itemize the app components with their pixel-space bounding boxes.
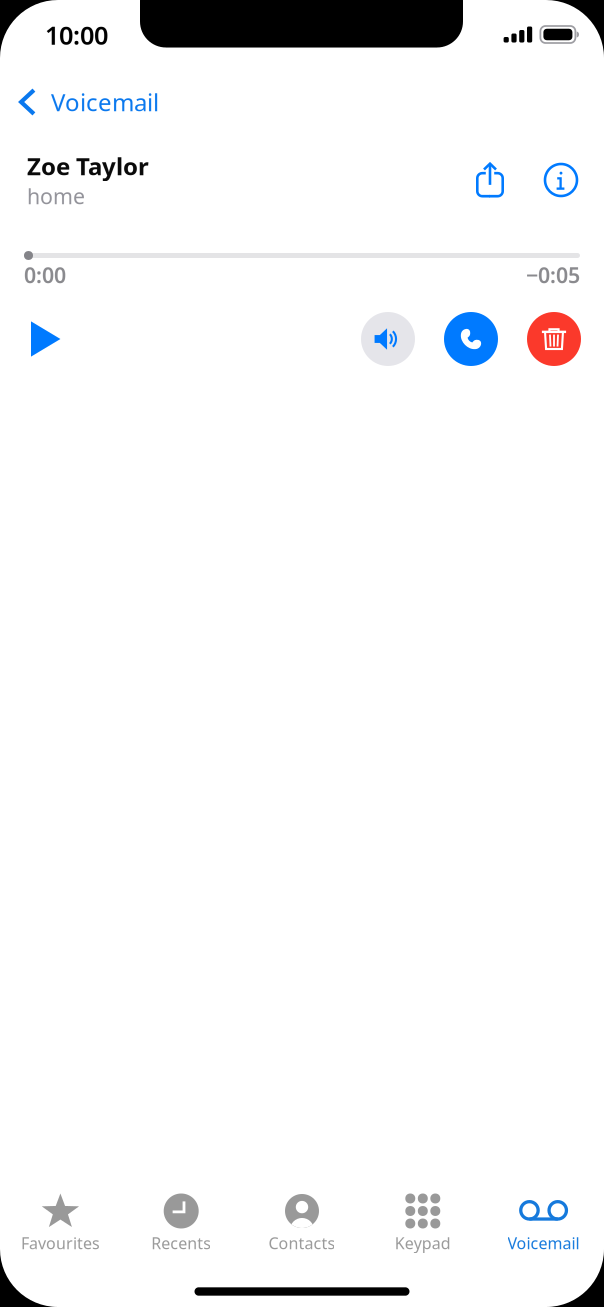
button[interactable]: Share [464,154,516,206]
staticText: Recents [151,1232,211,1254]
button[interactable]: Voicemail [483,1192,604,1252]
button[interactable]: Keypad [362,1192,483,1252]
button[interactable]: Contacts [242,1192,362,1252]
button[interactable]: Delete [523,308,585,370]
staticText: 0:00 [24,261,66,289]
staticText: Contacts [268,1232,335,1254]
button[interactable]: Contact info [537,154,585,206]
button[interactable]: Speaker [357,308,419,370]
staticText: Favourites [21,1232,100,1254]
button[interactable]: Voicemail [0,70,173,134]
staticText: home [27,182,85,210]
staticText: Voicemail [51,86,159,118]
staticText: Voicemail [508,1232,580,1254]
staticText: Zoe Taylor [27,150,149,182]
button[interactable]: Call back [440,308,502,370]
button[interactable]: Favourites [0,1192,121,1252]
staticText: Keypad [395,1232,451,1254]
button[interactable]: Play [17,308,73,370]
staticText: 10:00 [45,18,108,52]
staticText: −0:05 [526,261,580,289]
button[interactable]: Recents [121,1192,242,1252]
